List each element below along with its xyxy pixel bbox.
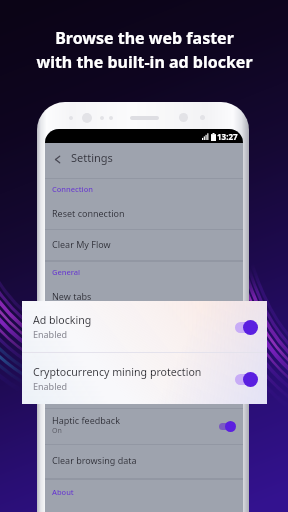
button[interactable]: Images <box>45 377 243 409</box>
button[interactable]: Toggle haptic feedback <box>218 421 236 432</box>
button[interactable]: Toggle setting <box>235 371 258 387</box>
staticText: Cryptocurrency mining protection <box>33 365 202 379</box>
staticText: Search engine <box>52 321 112 333</box>
button[interactable]: New tabs <box>45 282 243 313</box>
button[interactable]: Search engine <box>45 313 243 345</box>
button[interactable]: Cryptocurrency mining protection <box>22 353 267 404</box>
button[interactable]: Downloads <box>45 345 243 377</box>
staticText: On <box>52 426 62 436</box>
staticText: Clear browsing data <box>52 454 137 466</box>
staticText: General <box>52 267 81 277</box>
button[interactable]: Haptic feedback <box>45 409 243 444</box>
staticText: Images <box>52 385 84 397</box>
staticText: Clear My Flow <box>52 238 111 250</box>
button[interactable]: Clear browsing data <box>45 445 243 479</box>
other: Back <box>52 154 63 165</box>
staticText: Reset connection <box>52 207 125 219</box>
button[interactable]: Reset connection <box>45 199 243 230</box>
staticText: Haptic feedback <box>52 414 120 426</box>
staticText: New tabs <box>52 290 92 302</box>
staticText: Enabled <box>33 328 68 340</box>
button[interactable]: Toggle setting <box>235 319 258 335</box>
button[interactable]: Back <box>45 140 243 178</box>
staticText: with the built-in ad blocker <box>36 51 253 73</box>
button[interactable]: Clear My Flow <box>45 230 243 261</box>
staticText: About <box>52 487 74 497</box>
button[interactable]: Ad blocking <box>22 301 267 352</box>
staticText: 13:27 <box>217 131 238 142</box>
staticText: Connection <box>52 184 93 194</box>
staticText: Settings <box>71 150 113 165</box>
staticText: Enabled <box>33 380 68 392</box>
staticText: Ad blocking <box>33 313 92 327</box>
staticText: Browse the web faster <box>55 27 234 49</box>
